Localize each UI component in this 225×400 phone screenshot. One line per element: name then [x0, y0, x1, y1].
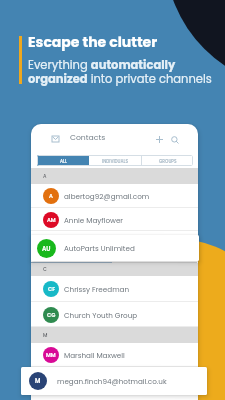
staticText: Annie Mayflower — [64, 215, 124, 225]
staticText: C — [43, 266, 47, 273]
staticText: megan.finch94@hotmail.co.uk — [57, 376, 167, 386]
staticText: CF — [48, 285, 55, 293]
button[interactable]: Search — [166, 131, 183, 148]
button[interactable]: M — [21, 367, 207, 395]
staticText: A — [43, 173, 47, 180]
button[interactable]: AM — [31, 208, 198, 231]
button[interactable]: MM — [31, 343, 198, 367]
button[interactable]: Mail — [47, 132, 63, 146]
staticText: GROUPS — [159, 158, 177, 164]
button[interactable]: ALL — [37, 155, 89, 166]
staticText: CG — [47, 311, 56, 319]
staticText: MM — [46, 351, 56, 359]
staticText: A — [49, 192, 53, 200]
staticText: INDIVIDUALS — [102, 158, 129, 164]
staticText: Church Youth Group — [64, 310, 138, 320]
button[interactable]: INDIVIDUALS — [89, 155, 141, 166]
staticText: ALL — [60, 158, 67, 164]
button[interactable]: A — [31, 184, 198, 208]
button[interactable]: CF — [31, 276, 198, 302]
button[interactable]: CG — [31, 302, 198, 327]
staticText: AutoParts Unlimited — [64, 243, 135, 253]
staticText: Everything automatically organized into … — [28, 57, 212, 87]
staticText: albertog92@gmail.com — [64, 191, 150, 201]
staticText: M — [35, 377, 41, 385]
staticText: AM — [47, 216, 56, 224]
staticText: Contacts — [70, 132, 106, 143]
staticText: M — [43, 332, 48, 339]
staticText: Marshall Maxwell — [64, 350, 125, 360]
staticText: AU — [42, 245, 51, 253]
staticText: Chrissy Freedman — [64, 284, 130, 294]
staticText: Escape the clutter — [28, 32, 158, 52]
button[interactable]: GROUPS — [142, 155, 193, 166]
button[interactable]: Add contact — [151, 131, 168, 148]
button[interactable]: AU — [31, 235, 199, 261]
